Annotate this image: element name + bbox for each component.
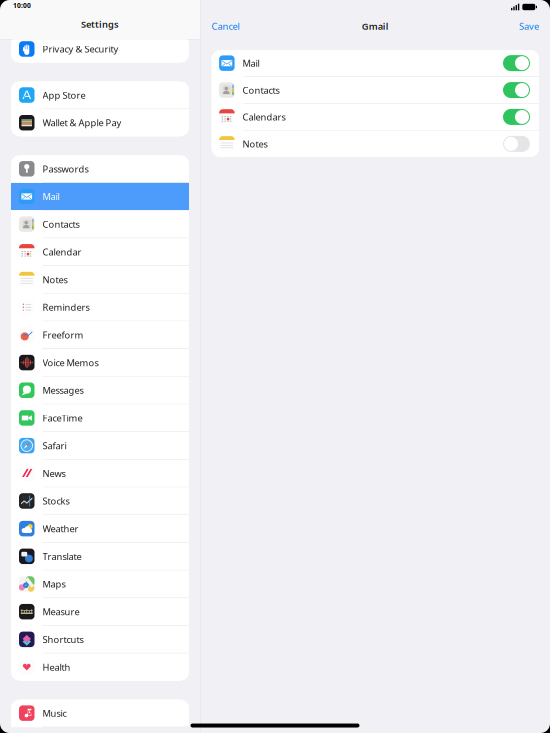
button[interactable]: Mail [11,183,189,210]
button[interactable]: Freeform [11,321,189,348]
staticText: Save [519,20,539,32]
staticText: Shortcuts [42,633,83,646]
staticText: Privacy & Security [42,43,118,55]
staticText: Passwords [42,163,88,175]
button[interactable]: Passwords [11,155,189,182]
staticText: Stocks [42,495,69,507]
button[interactable]: Stocks [11,487,189,514]
button[interactable]: Messages [11,377,189,404]
staticText: Contacts [42,218,79,230]
button[interactable]: Maps [11,570,189,598]
button[interactable]: Contacts [11,211,189,238]
button[interactable]: Cancel [212,20,240,32]
staticText: Reminders [42,301,89,313]
button[interactable]: Notes [212,131,539,157]
staticText: Notes [42,273,67,286]
button[interactable]: Shortcuts [11,626,189,653]
staticText: Messages [42,384,83,396]
staticText: Calendar [42,246,81,258]
staticText: Mail [243,57,260,69]
button[interactable]: Weather [11,515,189,542]
staticText: 10:00 [13,1,31,10]
staticText: Weather [42,522,78,535]
staticText: Notes [243,138,268,150]
staticText: Safari [42,439,66,452]
staticText: Voice Memos [42,356,98,369]
staticText: Contacts [243,84,280,96]
staticText: News [42,467,65,479]
button[interactable]: Music [11,700,189,727]
staticText: Health [42,661,70,673]
button[interactable]: Calendars [212,104,539,130]
staticText: Translate [42,550,81,562]
staticText: Music [42,707,66,719]
button[interactable]: Reminders [11,294,189,321]
button[interactable]: Wallet & Apple Pay [11,109,189,136]
staticText: Calendars [243,111,286,123]
staticText: Freeform [42,329,83,341]
staticText: Wallet & Apple Pay [42,116,121,129]
staticText: Mail [42,190,59,203]
staticText: Maps [42,578,65,590]
staticText: Settings [81,18,119,30]
button[interactable]: Save [519,20,539,32]
button[interactable]: FaceTime [11,404,189,431]
staticText: App Store [42,89,85,101]
button[interactable]: Voice Memos [11,349,189,376]
button[interactable]: Measure [11,598,189,625]
button[interactable]: Health [11,653,189,681]
button[interactable]: Mail [212,50,539,76]
button[interactable]: Notes [11,266,189,293]
button[interactable]: News [11,460,189,487]
button[interactable]: Translate [11,543,189,570]
button[interactable]: Calendar [11,238,189,265]
staticText: Gmail [362,20,389,32]
staticText: FaceTime [42,412,82,424]
staticText: Measure [42,605,79,618]
button[interactable]: Safari [11,432,189,459]
button[interactable]: App Store [11,81,189,109]
button[interactable]: Contacts [212,77,539,103]
button[interactable]: Privacy & Security [11,35,189,62]
staticText: Cancel [212,20,240,32]
